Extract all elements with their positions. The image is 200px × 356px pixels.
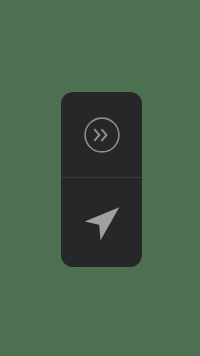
button[interactable]: Navigate: [61, 178, 142, 267]
button[interactable]: Skip forward: [61, 92, 142, 177]
